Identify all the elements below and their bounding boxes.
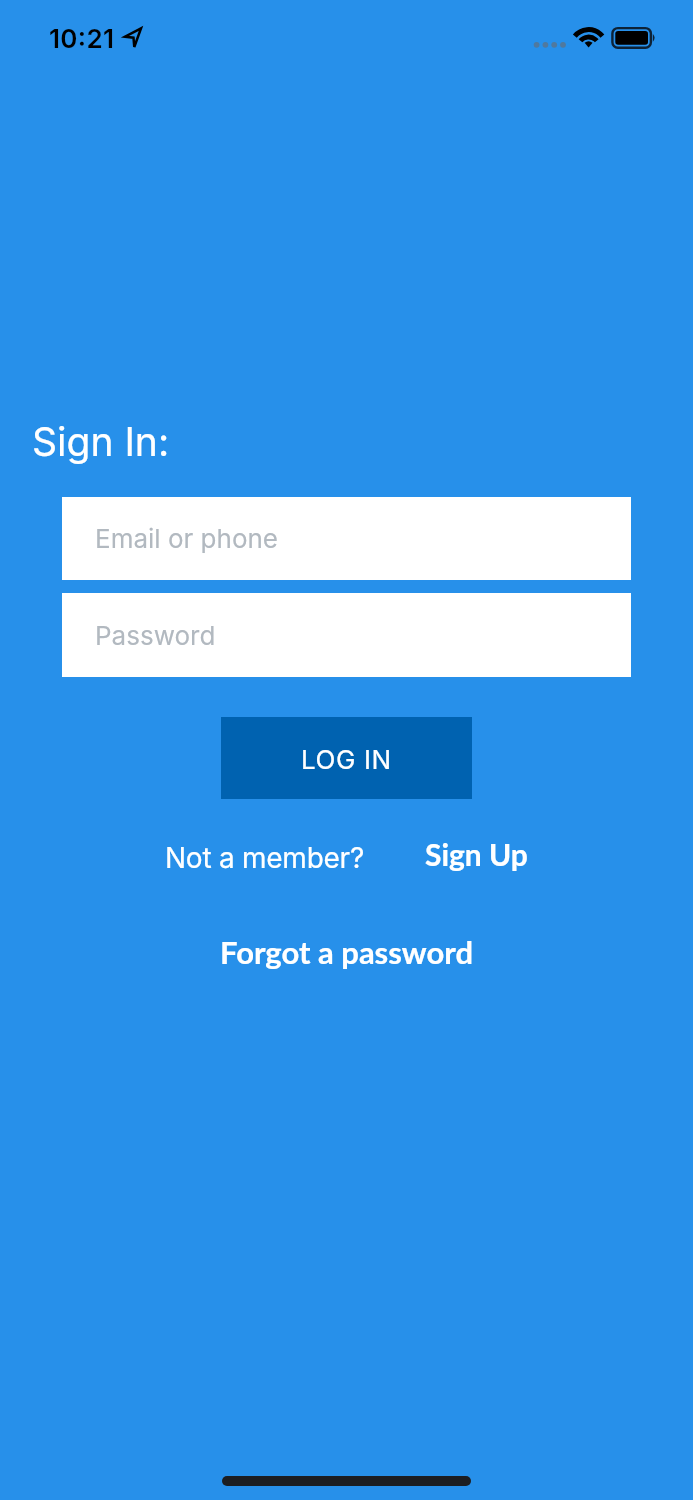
staticText: LOG IN bbox=[301, 744, 392, 775]
button[interactable]: Password bbox=[62, 593, 631, 677]
staticText: Not a member? bbox=[165, 841, 364, 875]
staticText: Email or phone bbox=[95, 523, 279, 554]
button[interactable]: Sign Up bbox=[425, 836, 528, 872]
staticText: 10:21 bbox=[49, 23, 115, 54]
staticText: Password bbox=[95, 620, 216, 651]
button[interactable]: Email or phone bbox=[62, 497, 631, 580]
staticText: Sign In: bbox=[32, 418, 170, 465]
button[interactable]: Forgot a password bbox=[220, 933, 474, 970]
button[interactable]: LOG IN bbox=[221, 717, 472, 799]
